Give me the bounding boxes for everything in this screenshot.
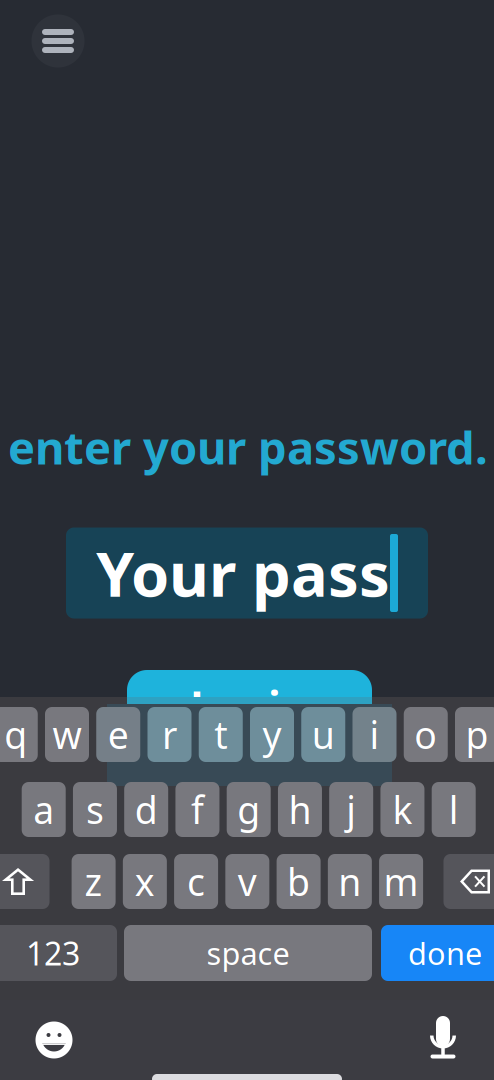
staticText: a: [33, 785, 54, 834]
staticText: Login: [190, 678, 309, 734]
staticText: enter your password.: [8, 417, 488, 477]
button[interactable]: l: [432, 782, 476, 837]
button[interactable]: w: [45, 707, 89, 762]
staticText: done: [408, 933, 482, 973]
button[interactable]: j: [329, 782, 373, 837]
staticText: Your pass: [96, 532, 390, 614]
staticText: u: [312, 710, 335, 759]
staticText: o: [414, 710, 437, 759]
button[interactable]: g: [227, 782, 271, 837]
staticText: t: [214, 710, 227, 759]
staticText: r: [162, 710, 177, 759]
staticText: b: [287, 857, 310, 906]
button[interactable]: d: [124, 782, 168, 837]
staticText: p: [465, 710, 488, 759]
staticText: l: [449, 785, 459, 834]
staticText: j: [346, 785, 356, 834]
button[interactable]: 123: [0, 925, 117, 981]
button[interactable]: c: [174, 854, 218, 909]
staticText: e: [108, 710, 129, 759]
button[interactable]: m: [379, 854, 423, 909]
button[interactable]: y: [250, 707, 294, 762]
staticText: 123: [26, 932, 80, 974]
staticText: d: [135, 785, 158, 834]
button[interactable]: v: [225, 854, 269, 909]
staticText: i: [369, 710, 379, 759]
button[interactable]: Emoji: [35, 1021, 72, 1058]
staticText: w: [52, 710, 81, 759]
button[interactable]: o: [404, 707, 448, 762]
staticText: n: [338, 857, 361, 906]
button[interactable]: Delete: [443, 854, 494, 909]
button[interactable]: r: [147, 707, 191, 762]
staticText: s: [86, 785, 104, 834]
staticText: v: [238, 857, 257, 906]
button[interactable]: z: [72, 854, 116, 909]
staticText: f: [191, 785, 204, 834]
staticText: h: [288, 785, 311, 834]
button[interactable]: Dictate: [428, 1015, 458, 1060]
button[interactable]: e: [96, 707, 140, 762]
staticText: x: [135, 857, 155, 906]
button[interactable]: Menu: [31, 14, 84, 67]
button[interactable]: q: [0, 707, 38, 762]
button[interactable]: f: [175, 782, 219, 837]
button[interactable]: b: [277, 854, 321, 909]
button[interactable]: u: [301, 707, 345, 762]
button[interactable]: i: [352, 707, 396, 762]
staticText: k: [392, 785, 412, 834]
button[interactable]: h: [278, 782, 322, 837]
button[interactable]: n: [328, 854, 372, 909]
staticText: c: [187, 857, 205, 906]
button[interactable]: space: [124, 925, 372, 981]
button[interactable]: Login: [127, 670, 372, 742]
button[interactable]: x: [123, 854, 167, 909]
staticText: g: [237, 785, 260, 834]
button[interactable]: k: [380, 782, 424, 837]
button[interactable]: Shift: [0, 854, 49, 909]
staticText: y: [262, 710, 281, 759]
button[interactable]: a: [22, 782, 66, 837]
button[interactable]: s: [73, 782, 117, 837]
staticText: q: [4, 710, 27, 759]
button[interactable]: done: [381, 925, 494, 981]
staticText: space: [206, 933, 289, 973]
staticText: m: [384, 857, 419, 906]
staticText: z: [85, 857, 103, 906]
button[interactable]: p: [455, 707, 494, 762]
button[interactable]: t: [199, 707, 243, 762]
